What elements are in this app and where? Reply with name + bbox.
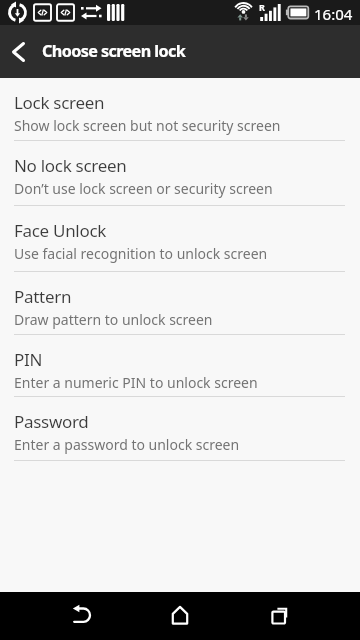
staticText: 16:04 xyxy=(314,4,353,24)
staticText: Draw pattern to unlock screen xyxy=(14,310,213,329)
staticText: Enter a password to unlock screen xyxy=(14,435,240,454)
button[interactable]: No lock screen xyxy=(0,141,360,206)
staticText: Choose screen lock xyxy=(42,40,186,62)
button[interactable] xyxy=(156,592,204,640)
button[interactable] xyxy=(252,592,300,640)
staticText: Enter a numeric PIN to unlock screen xyxy=(14,373,258,392)
staticText: Face Unlock xyxy=(14,219,107,242)
button[interactable]: PIN xyxy=(0,335,360,397)
staticText: Pattern xyxy=(14,285,72,308)
button[interactable]: Pattern xyxy=(0,272,360,335)
staticText: R xyxy=(259,1,265,13)
button[interactable]: Password xyxy=(0,397,360,461)
staticText: Lock screen xyxy=(14,91,105,114)
button[interactable] xyxy=(60,592,108,640)
staticText: No lock screen xyxy=(14,154,127,177)
staticText: Don’t use lock screen or security screen xyxy=(14,179,273,198)
button[interactable]: Face Unlock xyxy=(0,206,360,272)
staticText: Password xyxy=(14,410,89,433)
button[interactable]: Lock screen xyxy=(0,78,360,141)
staticText: PIN xyxy=(14,348,43,371)
staticText: Show lock screen but not security screen xyxy=(14,116,281,135)
button[interactable] xyxy=(0,25,38,78)
staticText: Use facial recognition to unlock screen xyxy=(14,244,268,263)
